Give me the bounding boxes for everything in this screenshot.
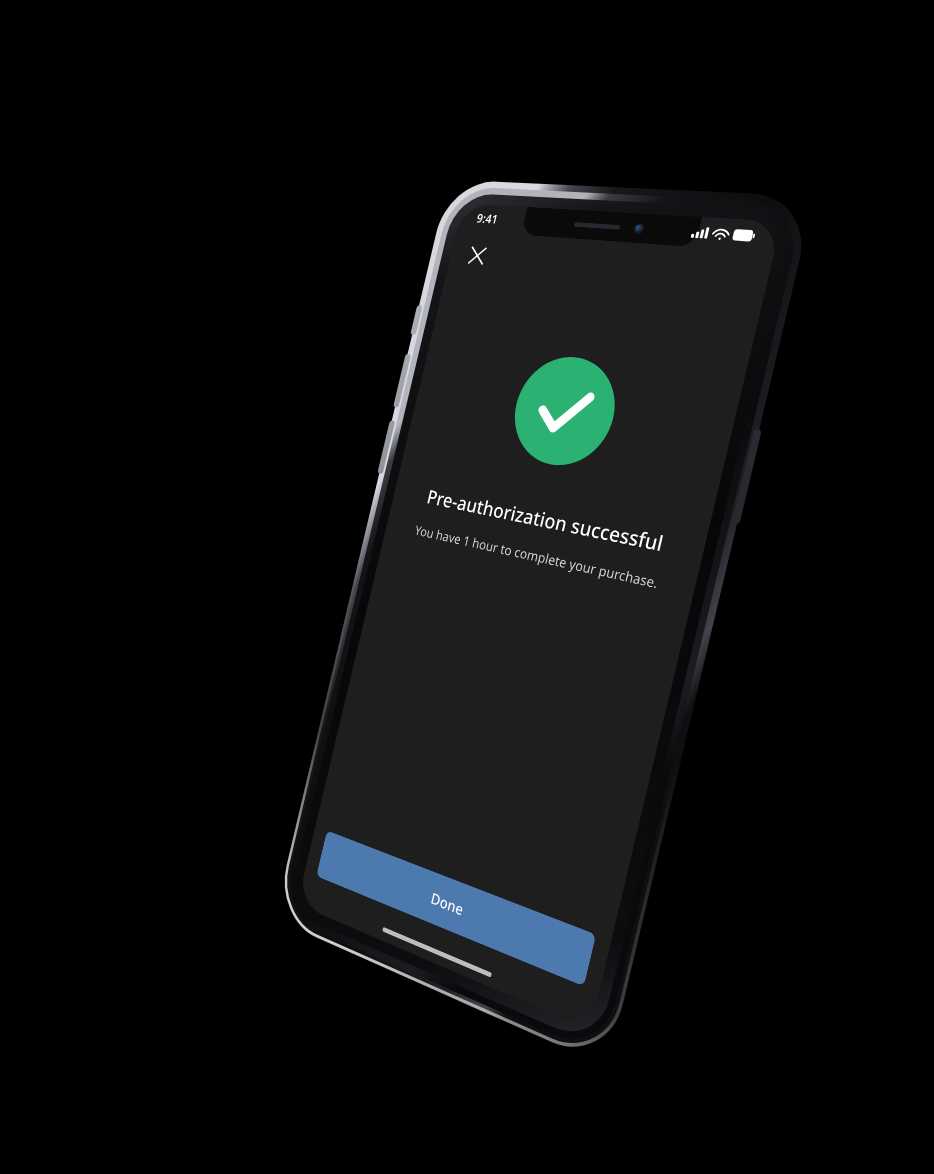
staticText: You have 1 hour to complete your purchas… <box>413 521 660 592</box>
button[interactable]: Close <box>455 234 499 277</box>
staticText: Done <box>429 887 466 920</box>
button[interactable]: Done <box>316 830 596 987</box>
staticText: 9:41 <box>475 210 500 227</box>
staticText: Pre-authorization successful <box>424 483 666 558</box>
